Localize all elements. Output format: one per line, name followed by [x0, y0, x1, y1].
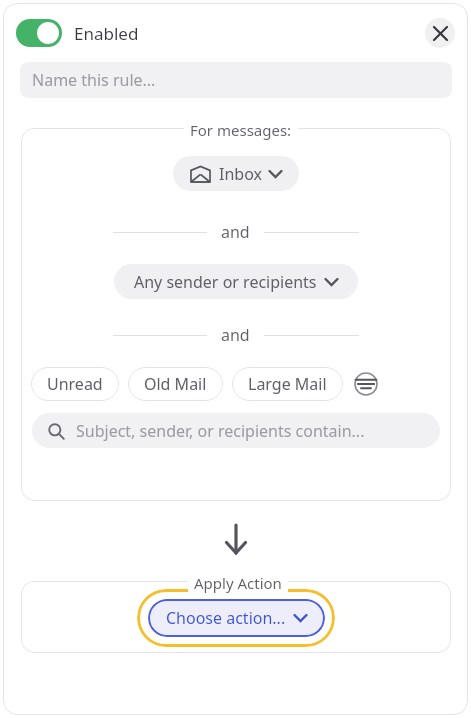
button[interactable]: Subject, sender, or recipients contain..…	[32, 413, 440, 448]
staticText: and	[221, 324, 250, 346]
button[interactable]: Any sender or recipients	[114, 264, 358, 299]
staticText: Name this rule...	[32, 69, 156, 91]
button[interactable]: More filters	[353, 371, 379, 397]
button[interactable]: Unread	[31, 367, 119, 401]
button[interactable]: Old Mail	[128, 367, 223, 401]
button[interactable]: Inbox	[173, 156, 299, 191]
staticText: Subject, sender, or recipients contain..…	[76, 420, 365, 442]
button[interactable]: Choose action...	[148, 599, 325, 637]
staticText: For messages:	[190, 120, 292, 140]
staticText: Inbox	[219, 163, 262, 185]
staticText: and	[221, 221, 250, 243]
button[interactable]: Close	[425, 18, 455, 48]
staticText: Apply Action	[194, 573, 282, 593]
staticText: Unread	[47, 373, 103, 395]
staticText: Choose action...	[166, 607, 286, 629]
staticText: Large Mail	[248, 373, 327, 395]
staticText: Old Mail	[144, 373, 207, 395]
button[interactable]: Enabled	[16, 19, 143, 47]
staticText: Any sender or recipients	[134, 271, 317, 293]
button[interactable]: Name this rule...	[20, 62, 452, 98]
staticText: Enabled	[74, 22, 139, 45]
button[interactable]: Large Mail	[232, 367, 343, 401]
